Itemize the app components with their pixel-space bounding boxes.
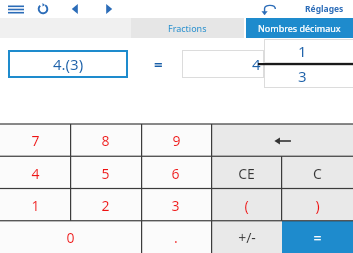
button[interactable]: 5 bbox=[70, 157, 140, 189]
button[interactable]: 8 bbox=[70, 124, 141, 157]
staticText: 5 bbox=[101, 164, 110, 183]
staticText: ) bbox=[315, 196, 320, 215]
button[interactable]: C bbox=[282, 157, 353, 189]
staticText: = bbox=[313, 228, 322, 247]
staticText: 3 bbox=[298, 66, 307, 86]
button[interactable]: Réglages bbox=[296, 0, 352, 18]
button[interactable]: 7 bbox=[0, 124, 70, 157]
staticText: 4 bbox=[252, 54, 261, 74]
button[interactable]: 4.(3) bbox=[8, 50, 128, 78]
button[interactable]: CE bbox=[211, 157, 282, 189]
staticText: CE bbox=[238, 164, 255, 183]
staticText: 7 bbox=[31, 131, 40, 150]
button[interactable]: Refresh bbox=[32, 1, 54, 17]
staticText: 2 bbox=[101, 196, 110, 215]
button[interactable]: +/- bbox=[211, 221, 282, 253]
button[interactable]: 9 bbox=[141, 124, 212, 157]
staticText: 4.(3) bbox=[53, 54, 84, 74]
staticText: 4 bbox=[31, 164, 40, 183]
staticText: Réglages bbox=[305, 3, 344, 15]
button[interactable]: Menu bbox=[4, 1, 28, 17]
button[interactable]: 0 bbox=[0, 221, 140, 253]
button[interactable]: Nombres décimaux bbox=[246, 18, 353, 38]
button[interactable]: . bbox=[140, 221, 211, 253]
button[interactable]: 3 bbox=[140, 189, 211, 221]
staticText: C bbox=[313, 164, 322, 183]
staticText: 3 bbox=[171, 196, 180, 215]
button[interactable]: ) bbox=[282, 189, 353, 221]
staticText: 1 bbox=[31, 196, 40, 215]
staticText: . bbox=[174, 228, 178, 247]
button[interactable]: Fractions bbox=[131, 18, 244, 38]
button[interactable]: Next bbox=[98, 1, 120, 17]
button[interactable]: 4 bbox=[0, 157, 70, 189]
staticText: 0 bbox=[66, 228, 75, 247]
button[interactable]: ( bbox=[211, 189, 282, 221]
staticText: 1 bbox=[298, 41, 307, 61]
staticText: 9 bbox=[172, 131, 181, 150]
button[interactable]: 6 bbox=[140, 157, 211, 189]
button[interactable]: = bbox=[282, 221, 353, 253]
staticText: ( bbox=[244, 196, 249, 215]
button[interactable]: Backspace bbox=[212, 124, 353, 157]
staticText: 8 bbox=[101, 131, 110, 150]
button[interactable]: 2 bbox=[70, 189, 140, 221]
staticText: = bbox=[154, 54, 163, 74]
button[interactable]: Undo bbox=[258, 1, 280, 17]
button[interactable]: 1 bbox=[0, 189, 70, 221]
staticText: +/- bbox=[238, 228, 256, 247]
button[interactable]: Previous bbox=[64, 1, 86, 17]
staticText: Nombres décimaux bbox=[258, 22, 341, 34]
staticText: 6 bbox=[171, 164, 180, 183]
staticText: Fractions bbox=[168, 22, 207, 34]
